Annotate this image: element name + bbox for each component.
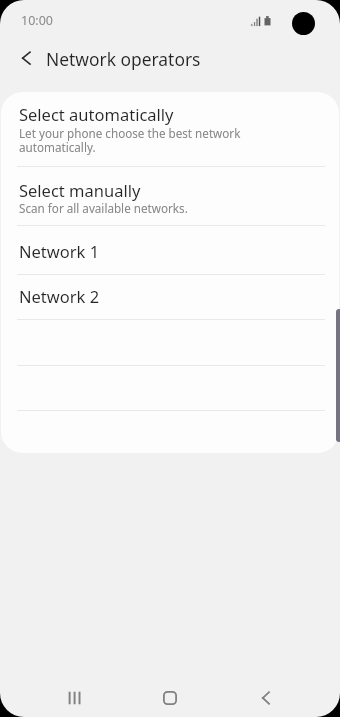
button[interactable] [1,319,339,365]
button[interactable]: Network 1 [1,225,339,274]
staticText: Network 2 [19,285,100,307]
staticText: Let your phone choose the best network a… [19,126,247,155]
staticText: Select manually [19,179,141,201]
button: Network operators [46,47,201,71]
button[interactable]: Recent apps [51,674,99,717]
button[interactable]: Select automatically [1,92,339,166]
button[interactable] [1,365,339,410]
staticText: Network 1 [19,240,100,262]
staticText: Scan for all available networks. [19,201,188,217]
staticText: 10:00 [21,12,53,29]
button[interactable] [1,410,339,453]
button[interactable]: Navigate up [6,38,48,80]
button[interactable]: Select manually [1,166,339,225]
staticText: Select automatically [19,103,174,125]
button[interactable]: Network 2 [1,274,339,319]
button[interactable]: Home [146,674,194,717]
button[interactable]: Back [242,674,290,717]
